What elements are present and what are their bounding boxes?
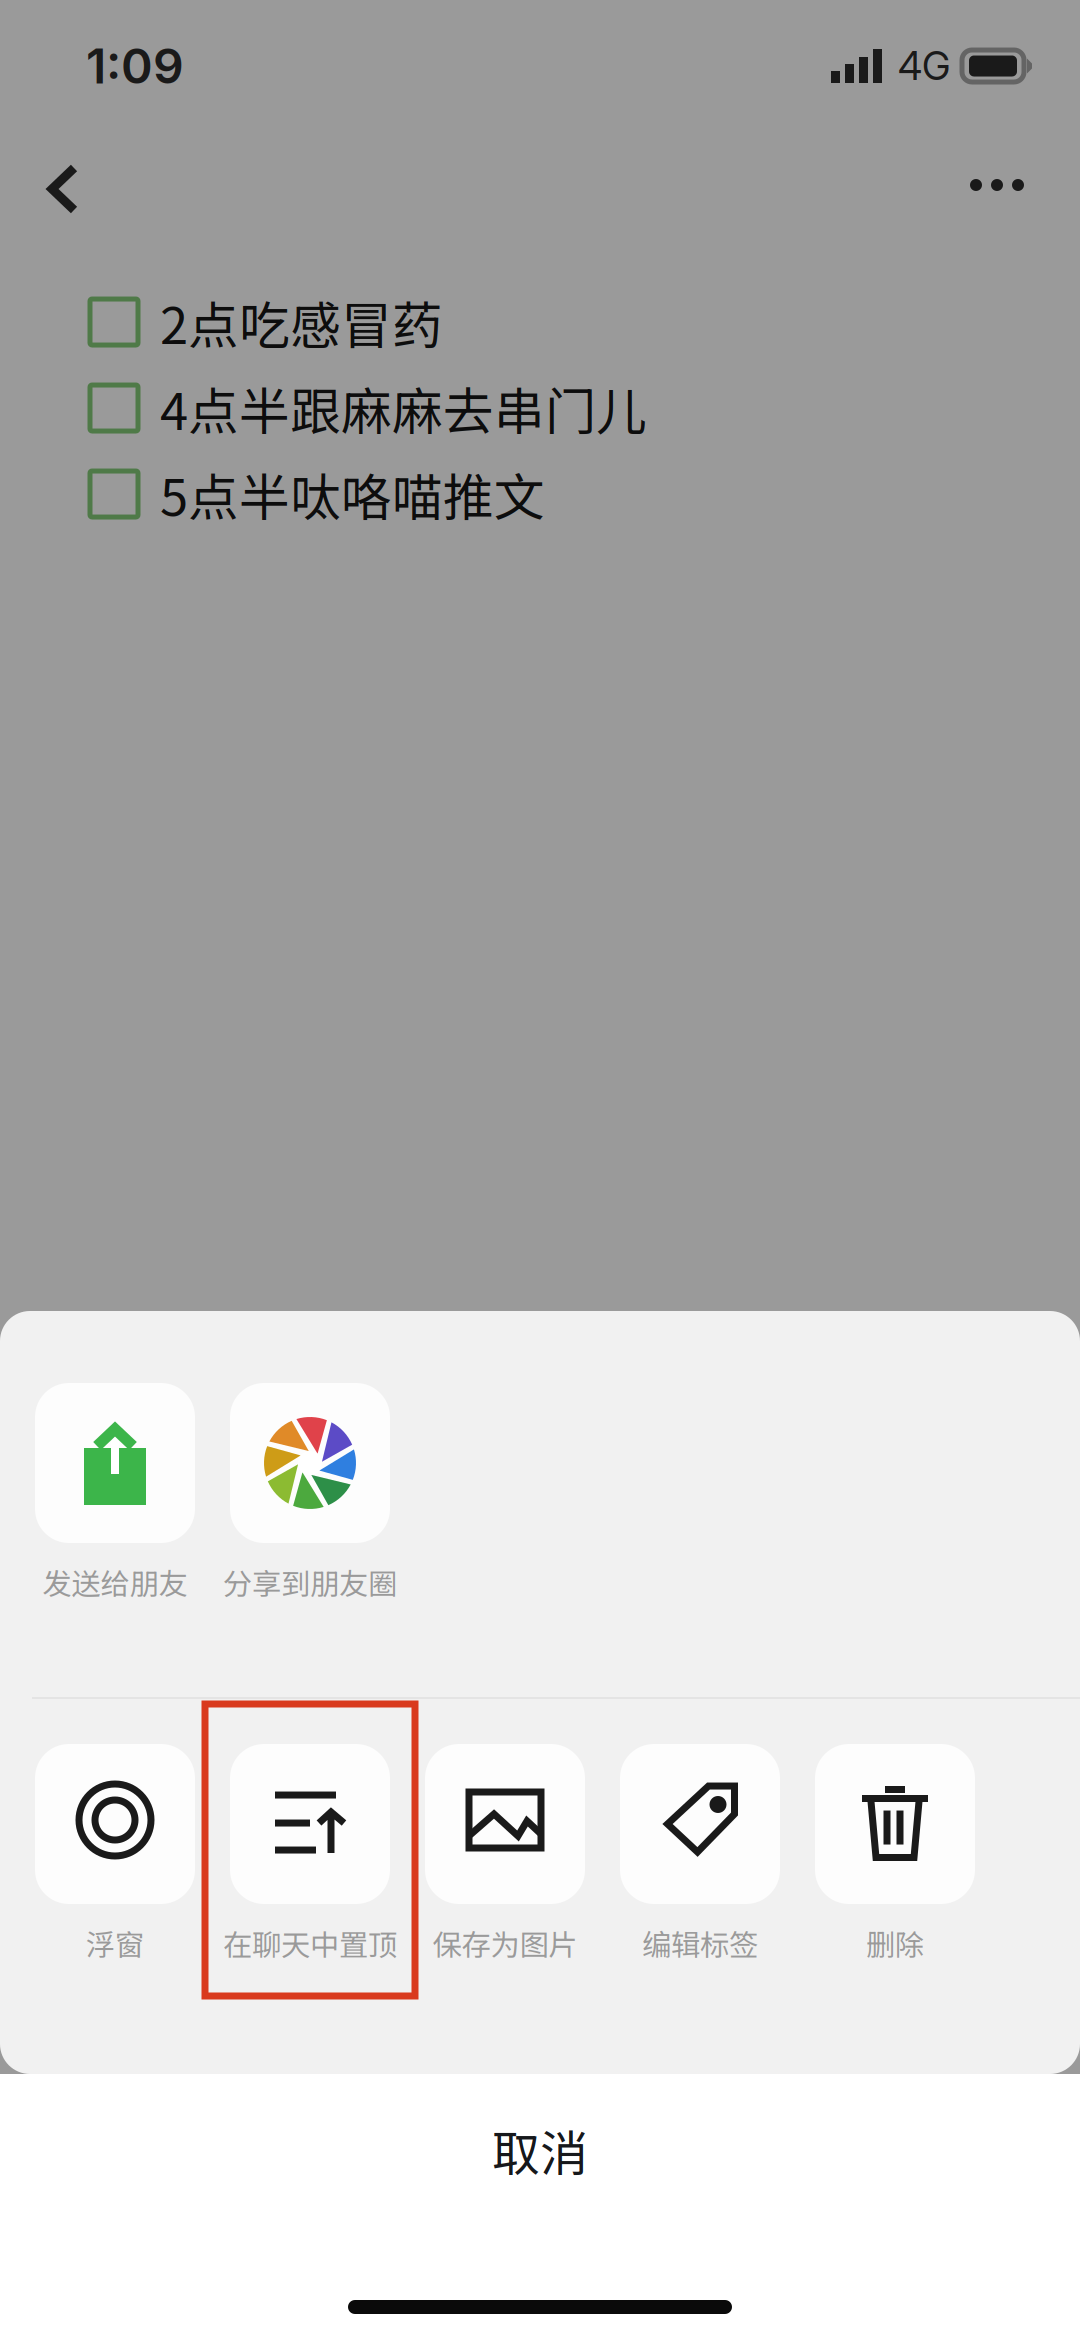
staticText: 保存为图片 [432,1922,577,1964]
staticText: 分享到朋友圈 [223,1561,397,1603]
staticText: 4G [898,43,950,89]
staticText: 4点半跟麻麻去串门儿 [160,371,647,445]
staticText: 5点半呔咯喵推文 [160,457,545,531]
staticText: 取消 [492,2115,588,2185]
button[interactable]: 发送给朋友 [35,1383,195,1619]
staticText: 发送给朋友 [42,1561,187,1603]
button[interactable]: 删除 [815,1744,975,1980]
button[interactable]: 分享到朋友圈 [230,1383,390,1619]
staticText: 在聊天中置顶 [223,1922,397,1964]
button[interactable]: 浮窗 [35,1744,195,1980]
button[interactable]: 在聊天中置顶 [230,1744,390,1980]
button[interactable]: 保存为图片 [425,1744,585,1980]
button[interactable]: More options [930,132,1080,238]
staticText: 2点吃感冒药 [160,285,443,359]
button[interactable]: 取消 [0,2074,1080,2339]
staticText: 浮窗 [86,1922,144,1964]
button[interactable]: 编辑标签 [620,1744,780,1980]
staticText: 1:09 [86,37,184,95]
button[interactable]: Back [0,132,120,238]
staticText: 编辑标签 [642,1922,758,1964]
staticText: 删除 [866,1922,924,1964]
